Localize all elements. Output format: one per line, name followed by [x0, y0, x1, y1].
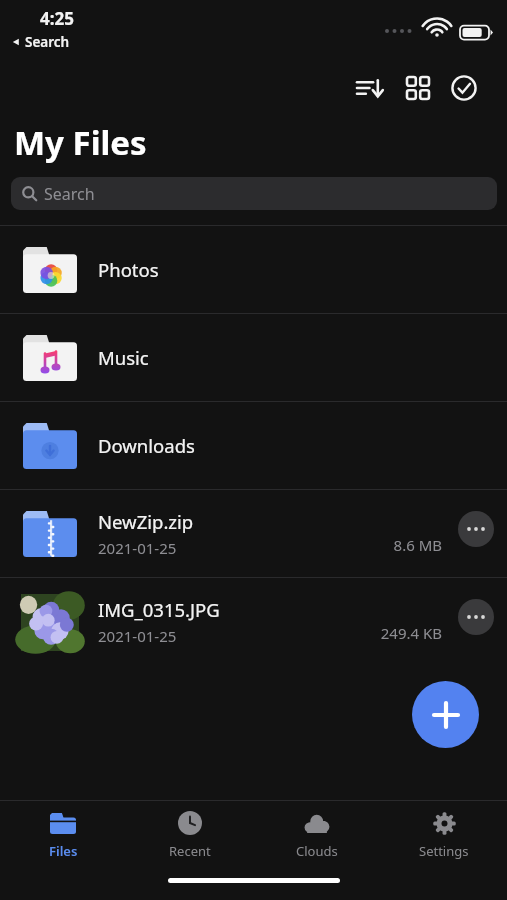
- staticText: NewZip.zip: [98, 509, 194, 534]
- button[interactable]: Add: [412, 681, 479, 748]
- staticText: 2021-01-25: [98, 538, 177, 558]
- staticText: Search: [44, 183, 95, 205]
- button[interactable]: More options: [458, 599, 494, 635]
- staticText: Search: [25, 33, 70, 51]
- button[interactable]: IMG_0315.JPG: [0, 578, 507, 665]
- staticText: Music: [98, 345, 149, 370]
- staticText: IMG_0315.JPG: [98, 597, 220, 622]
- button[interactable]: More options: [458, 511, 494, 547]
- button[interactable]: Recent: [126, 801, 253, 873]
- staticText: Clouds: [296, 842, 338, 860]
- button[interactable]: Files: [0, 801, 126, 873]
- staticText: Downloads: [98, 433, 195, 458]
- button[interactable]: Settings: [380, 801, 507, 873]
- button[interactable]: Select: [444, 68, 484, 108]
- button[interactable]: Sort: [350, 68, 390, 108]
- button[interactable]: Search: [11, 33, 70, 51]
- staticText: Photos: [98, 257, 159, 282]
- button[interactable]: Search: [11, 177, 497, 210]
- staticText: 249.4 KB: [380, 623, 442, 643]
- staticText: My Files: [14, 120, 147, 165]
- staticText: Recent: [169, 842, 211, 860]
- staticText: 8.6 MB: [393, 535, 442, 555]
- staticText: 2021-01-25: [98, 626, 177, 646]
- button[interactable]: Music: [0, 314, 507, 401]
- staticText: Files: [49, 842, 78, 860]
- button[interactable]: NewZip.zip: [0, 490, 507, 577]
- staticText: 4:25: [40, 7, 74, 30]
- button[interactable]: Clouds: [253, 801, 380, 873]
- staticText: Settings: [419, 842, 469, 860]
- button[interactable]: Downloads: [0, 402, 507, 489]
- button[interactable]: Photos: [0, 226, 507, 313]
- button[interactable]: Grid view: [398, 68, 438, 108]
